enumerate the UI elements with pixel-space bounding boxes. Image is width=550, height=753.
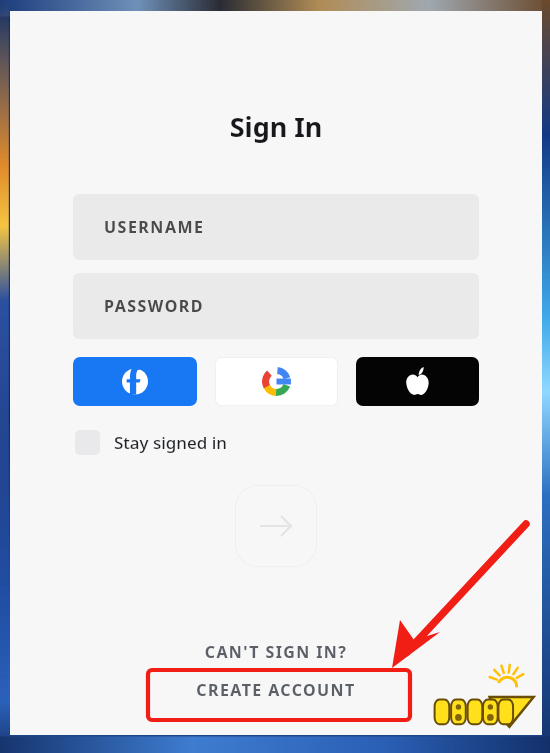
button[interactable]: CREATE ACCOUNT — [10, 679, 542, 701]
staticText: Sign In — [10, 108, 542, 145]
button[interactable]: PASSWORD — [73, 273, 479, 339]
button[interactable]: Stay signed in — [73, 426, 229, 459]
staticText: PASSWORD — [104, 295, 205, 317]
button[interactable]: Social sign in — [215, 357, 338, 406]
button[interactable]: USERNAME — [73, 194, 479, 260]
button[interactable]: Social sign in — [73, 357, 197, 406]
staticText: Stay signed in — [114, 431, 227, 454]
staticText: USERNAME — [104, 216, 205, 238]
button[interactable]: CAN'T SIGN IN? — [10, 641, 542, 663]
button[interactable]: Social sign in — [356, 357, 479, 406]
